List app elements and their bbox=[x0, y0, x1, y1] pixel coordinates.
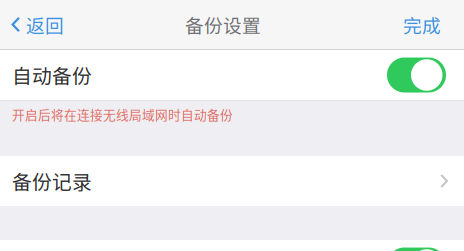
button[interactable]: 仅无线网络 bbox=[0, 240, 464, 251]
button[interactable]: 自动备份 bbox=[0, 50, 464, 100]
staticText: 备份记录 bbox=[12, 167, 92, 195]
staticText: 备份设置 bbox=[185, 11, 261, 38]
staticText: 自动备份 bbox=[12, 61, 92, 89]
button[interactable]: 完成 bbox=[388, 0, 464, 49]
staticText: 完成 bbox=[403, 11, 441, 38]
button[interactable]: 返回 bbox=[0, 0, 74, 49]
staticText: 开启后将在连接无线局域网时自动备份 bbox=[12, 105, 233, 123]
staticText: 返回 bbox=[26, 11, 64, 38]
button[interactable]: 备份记录 bbox=[0, 156, 464, 206]
